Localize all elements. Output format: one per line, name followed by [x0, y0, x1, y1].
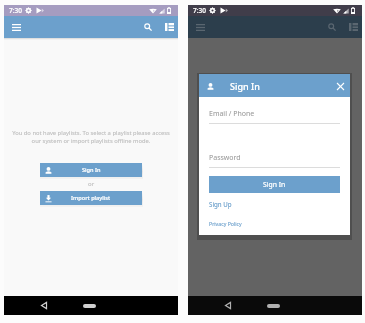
button[interactable]: Search: [140, 19, 156, 35]
staticText: or: [88, 180, 95, 188]
button[interactable]: Back: [34, 296, 53, 315]
staticText: Import playlist: [71, 194, 111, 202]
staticText: Sign In: [230, 80, 260, 92]
button[interactable]: View mode: [345, 19, 361, 35]
button[interactable]: Search: [324, 19, 340, 35]
staticText: 7:30: [9, 6, 22, 15]
button[interactable]: View mode: [161, 19, 177, 35]
button[interactable]: Menu: [192, 19, 208, 35]
button[interactable]: Home: [77, 296, 101, 315]
button[interactable]: Privacy Policy: [209, 220, 242, 227]
button[interactable]: Import playlist: [40, 191, 142, 205]
button[interactable]: Sign In: [40, 163, 142, 177]
staticText: Sign Up: [209, 200, 232, 208]
staticText: 7:30: [193, 6, 206, 15]
staticText: Sign In: [263, 180, 286, 189]
staticText: Password: [209, 153, 241, 163]
button[interactable]: Close: [334, 80, 346, 92]
button[interactable]: Sign In: [209, 176, 340, 193]
staticText: Sign In: [82, 166, 101, 174]
staticText: You do not have playlists. To select a p…: [10, 129, 172, 145]
button[interactable]: Home: [261, 296, 285, 315]
staticText: Email / Phone: [209, 109, 255, 119]
staticText: Privacy Policy: [209, 220, 242, 227]
button[interactable]: Menu: [8, 19, 24, 35]
button[interactable]: Sign Up: [209, 200, 232, 208]
button[interactable]: Back: [218, 296, 237, 315]
